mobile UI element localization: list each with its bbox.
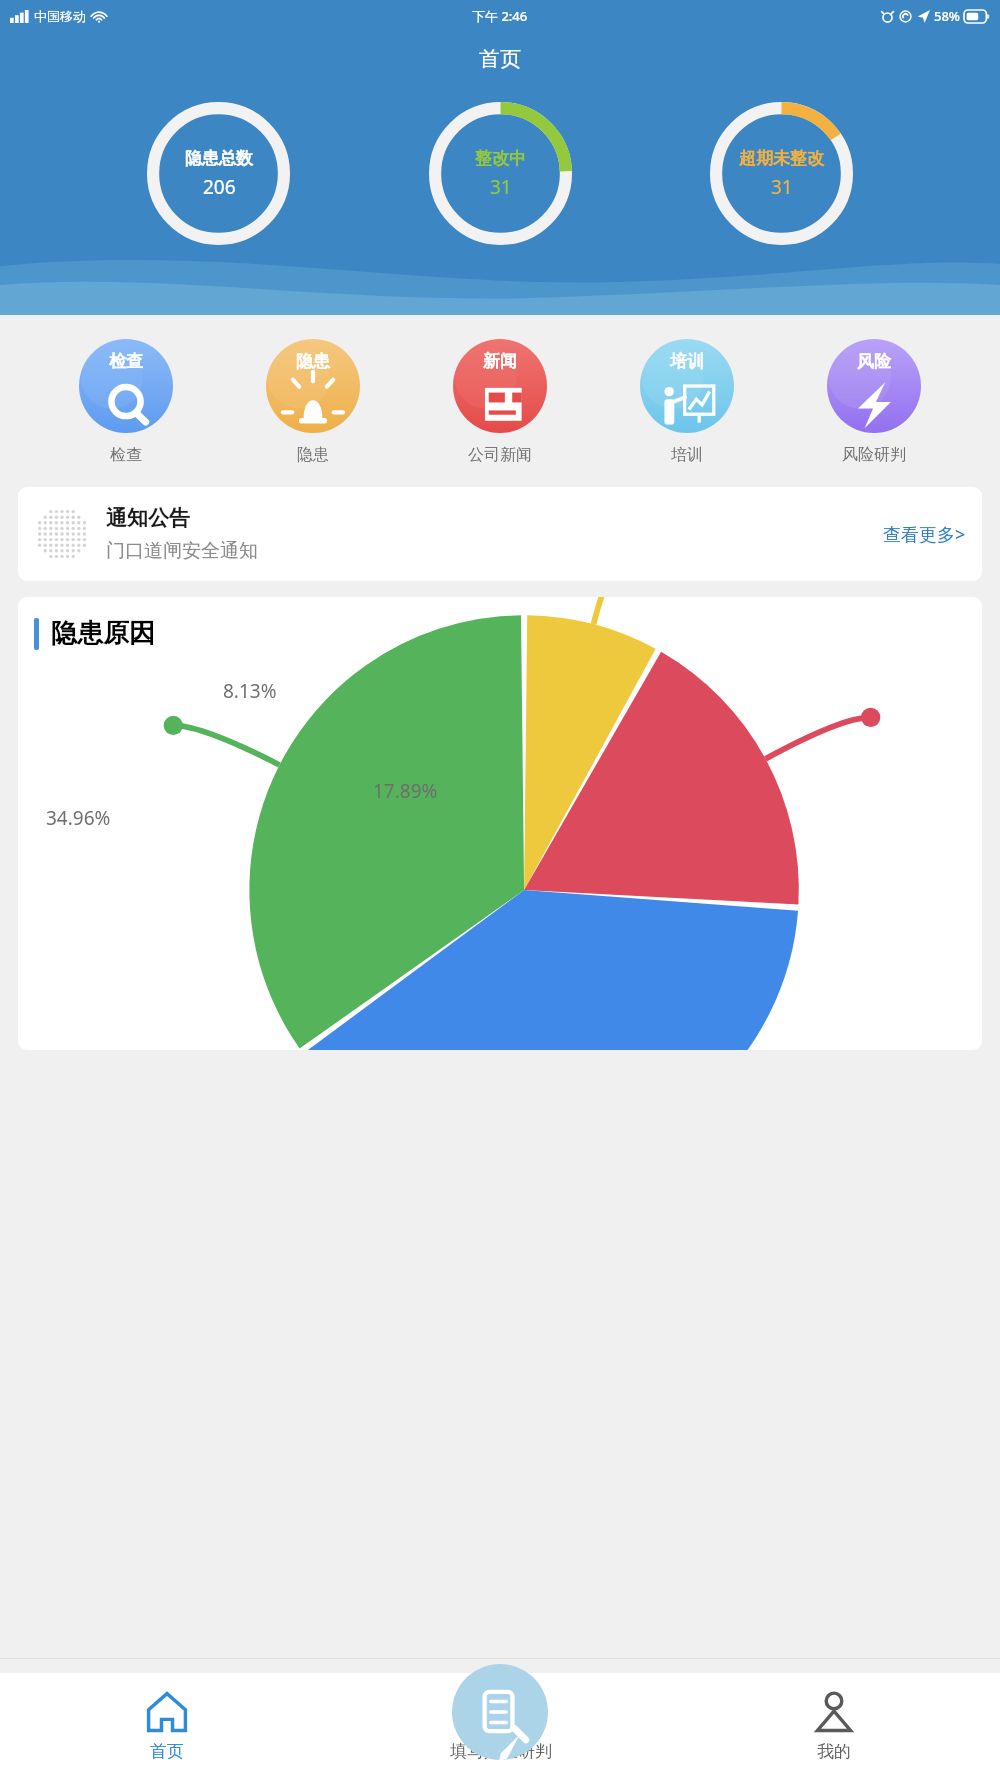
staticText: 31 (771, 174, 793, 200)
staticText: 中国移动 (34, 8, 86, 24)
button[interactable]: 首页 (0, 1673, 334, 1778)
staticText: 34.96% (46, 805, 111, 831)
staticText: 8.13% (223, 678, 277, 704)
button[interactable]: 查看更多> (883, 522, 966, 547)
button[interactable]: 隐患总数 (147, 102, 290, 245)
staticText: 公司新闻 (468, 445, 532, 465)
button[interactable]: 隐患 (248, 339, 378, 465)
staticText: 我的 (817, 1741, 851, 1762)
button[interactable]: 检查 (61, 339, 191, 465)
staticText: 下午 2:46 (472, 7, 528, 25)
staticText: 206 (203, 174, 236, 200)
staticText: 培训 (671, 445, 703, 465)
staticText: 首页 (150, 1741, 184, 1762)
staticText: 整改中 (475, 148, 526, 169)
staticText: 首页 (0, 46, 1000, 72)
staticText: 超期未整改 (739, 148, 824, 169)
staticText: 门口道闸安全通知 (106, 539, 258, 563)
staticText: 31 (490, 174, 512, 200)
staticText: 新闻 (483, 351, 517, 372)
button[interactable]: 风险 (809, 339, 939, 465)
staticText: 隐患 (296, 351, 330, 372)
staticText: 培训 (670, 351, 704, 372)
staticText: 检查 (110, 445, 142, 465)
staticText: 风险 (857, 351, 891, 372)
button[interactable]: 通知公告 (18, 487, 982, 581)
staticText: 检查 (109, 351, 143, 372)
button[interactable]: 填写风险研判 (334, 1673, 667, 1778)
staticText: 17.89% (373, 778, 438, 804)
staticText: 通知公告 (106, 505, 190, 531)
button[interactable]: 培训 (622, 339, 752, 465)
staticText: 隐患 (297, 445, 329, 465)
staticText: 隐患原因 (51, 617, 155, 650)
staticText: 填写风险研判 (450, 1741, 552, 1762)
button[interactable]: 超期未整改 (710, 102, 853, 245)
button[interactable]: 填写风险研判 (452, 1664, 548, 1760)
staticText: 隐患总数 (185, 148, 253, 169)
staticText: 风险研判 (842, 445, 906, 465)
staticText: 58% (934, 7, 960, 25)
button[interactable]: 我的 (667, 1673, 1000, 1778)
button[interactable]: 整改中 (429, 102, 572, 245)
button[interactable]: 新闻 (435, 339, 565, 465)
